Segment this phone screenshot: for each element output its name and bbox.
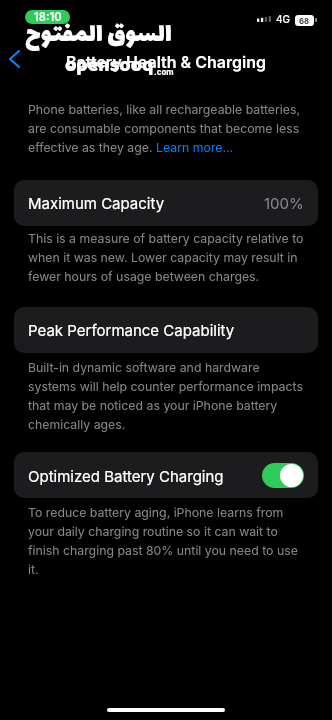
staticText: opensooq <box>65 50 154 81</box>
staticText: .com <box>154 67 174 77</box>
staticText: To reduce battery aging, iPhone learns f… <box>28 505 304 577</box>
staticText: Built-in dynamic software and hardware s… <box>28 360 304 432</box>
staticText: السوق المفتوح <box>25 14 172 58</box>
staticText: Battery Health & Charging <box>0 52 332 71</box>
staticText: 4G <box>276 13 291 25</box>
button[interactable]: Back <box>0 45 28 73</box>
staticText: Optimized Battery Charging <box>28 467 224 485</box>
button[interactable]: Peak Performance Capability <box>14 307 318 353</box>
staticText: This is a measure of battery capacity re… <box>28 231 304 284</box>
button[interactable]: Optimized Battery Charging <box>262 463 304 488</box>
button[interactable]: Maximum Capacity <box>14 180 318 226</box>
staticText: Maximum Capacity <box>28 194 165 212</box>
staticText: Phone batteries, like all rechargeable b… <box>28 102 304 155</box>
staticText: 68 <box>299 16 310 25</box>
button[interactable]: Optimized Battery Charging <box>14 452 318 498</box>
staticText: 100% <box>264 194 304 212</box>
staticText: 18:10 <box>34 10 62 24</box>
staticText: Peak Performance Capability <box>28 321 235 339</box>
